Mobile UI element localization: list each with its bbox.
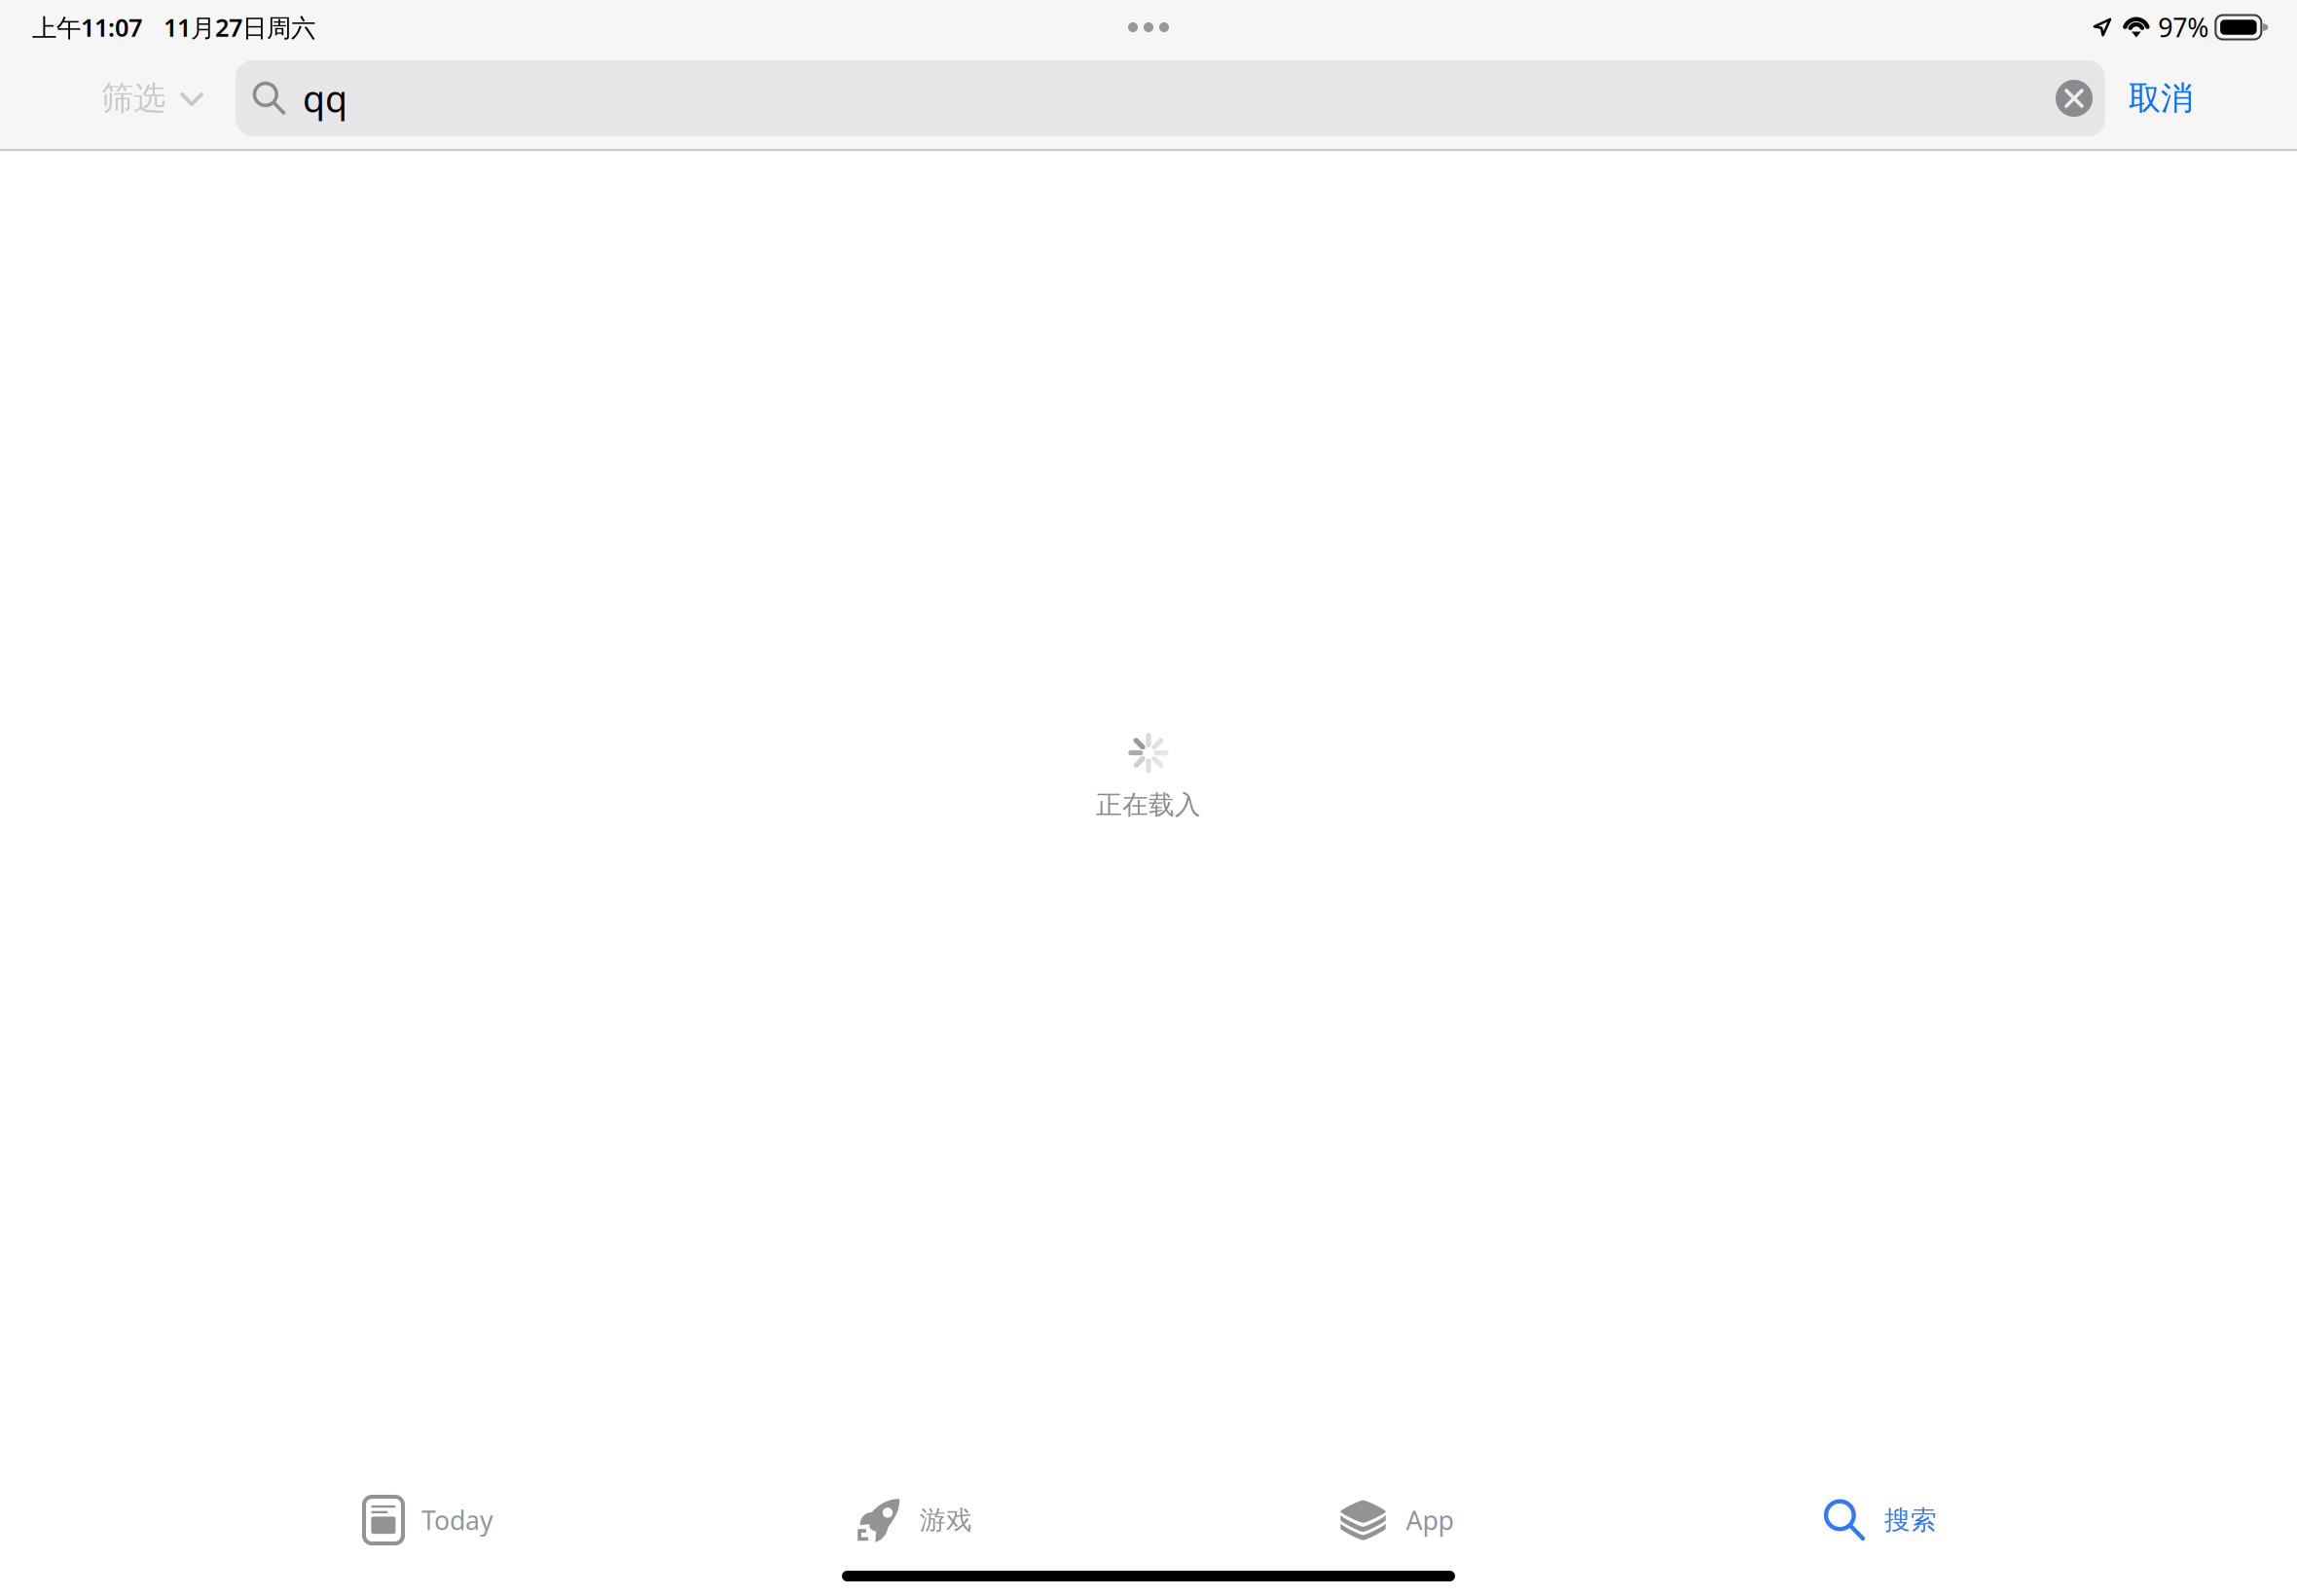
staticText: 取消 (2129, 78, 2193, 118)
staticText: 97% (2158, 10, 2209, 44)
button[interactable]: 取消 (2129, 60, 2193, 136)
button[interactable]: 游戏 (671, 1484, 1154, 1556)
button[interactable]: Today (187, 1484, 671, 1556)
staticText: 游戏 (920, 1504, 972, 1536)
button[interactable]: App (1154, 1484, 1638, 1556)
staticText: 正在载入 (1096, 789, 1201, 821)
staticText: 上午11:07 (32, 11, 142, 44)
staticText: Today (421, 1503, 493, 1537)
button[interactable]: 筛选 (101, 60, 203, 136)
staticText: qq (303, 74, 347, 122)
staticText: 11月27日周六 (164, 11, 315, 44)
button[interactable]: Clear search text (2044, 68, 2104, 128)
staticText: 搜索 (1884, 1504, 1937, 1536)
button[interactable]: 搜索 (1638, 1484, 2122, 1556)
staticText: App (1406, 1503, 1454, 1537)
staticText: 筛选 (101, 78, 165, 118)
